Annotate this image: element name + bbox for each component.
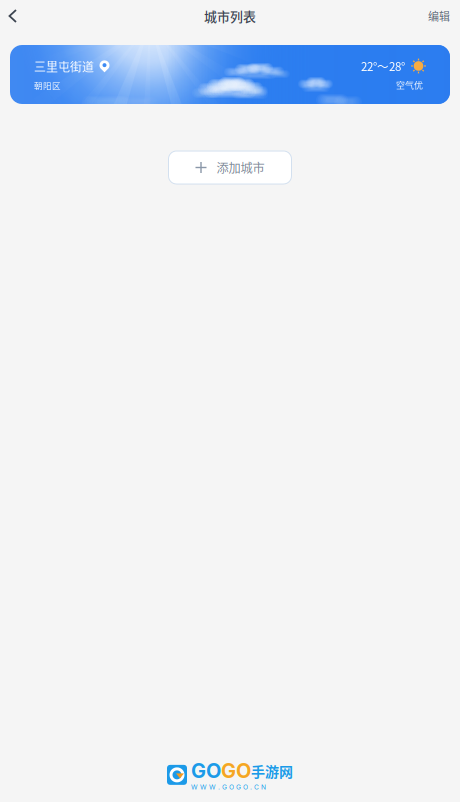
staticText: 手游网	[251, 761, 293, 781]
button[interactable]: 三里屯街道	[10, 45, 450, 104]
button[interactable]: 编辑	[428, 0, 450, 32]
staticText: 22°～28°	[361, 58, 405, 74]
staticText: GO	[221, 759, 251, 783]
staticText: 城市列表	[204, 7, 256, 25]
staticText: 添加城市	[216, 159, 264, 176]
staticText: 三里屯街道	[34, 58, 94, 75]
staticText: 朝阳区	[34, 79, 61, 91]
staticText: W W W . G O G O . C N	[191, 783, 266, 791]
button[interactable]: 添加城市	[168, 151, 291, 184]
staticText: 编辑	[428, 8, 450, 24]
staticText: GO	[191, 759, 221, 783]
staticText: 空气优	[396, 78, 423, 91]
button[interactable]: 返回	[1, 0, 25, 32]
